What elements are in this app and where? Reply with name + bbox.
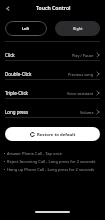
staticText: Volume bbox=[80, 110, 94, 115]
staticText: Long press bbox=[5, 109, 29, 115]
button[interactable]: Back bbox=[1, 1, 15, 15]
staticText: Hang up Phone Call - Long press for 2 se… bbox=[7, 167, 95, 172]
staticText: Previous song bbox=[68, 72, 94, 77]
staticText: Click bbox=[5, 52, 15, 58]
staticText: Restore to default bbox=[37, 131, 76, 137]
button[interactable]: Long press bbox=[0, 99, 105, 117]
staticText: Left bbox=[22, 26, 30, 31]
button[interactable]: Click bbox=[0, 42, 105, 60]
staticText: Right bbox=[73, 26, 83, 31]
staticText: Reject Incoming Call - Long press for 2 … bbox=[7, 159, 96, 164]
button[interactable]: Left bbox=[5, 21, 47, 36]
staticText: Double-Click bbox=[5, 71, 32, 77]
staticText: Triple-Click bbox=[5, 90, 28, 96]
button[interactable]: Double-Click bbox=[0, 61, 105, 79]
button[interactable]: Triple-Click bbox=[0, 80, 105, 98]
button[interactable]: Restore to default bbox=[5, 127, 100, 141]
staticText: Touch Control bbox=[36, 5, 71, 12]
staticText: Play / Pause bbox=[72, 53, 94, 58]
staticText: Voice assistant bbox=[67, 91, 94, 96]
staticText: Answer Phone Call - Tap once bbox=[7, 151, 63, 156]
button[interactable]: Right bbox=[55, 21, 100, 36]
